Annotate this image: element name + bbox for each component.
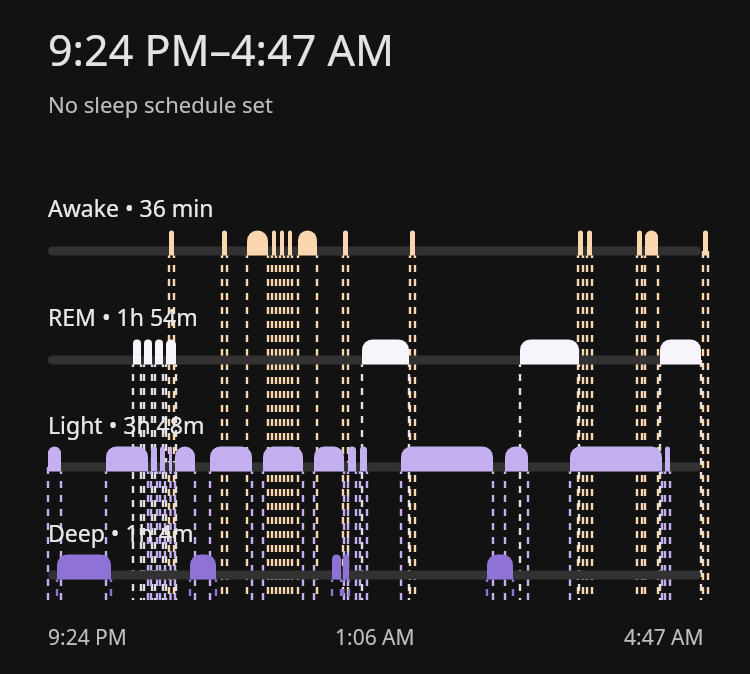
button[interactable]: 9:24 PM–4:47 AM: [0, 16, 750, 123]
staticText: REM • 1h 54m: [48, 301, 198, 332]
button[interactable]: Deep • 1h 4m: [48, 517, 194, 548]
button[interactable]: Awake • 36 min: [48, 192, 214, 223]
staticText: 4:47 AM: [624, 623, 704, 652]
staticText: 9:24 PM–4:47 AM: [48, 20, 394, 79]
button[interactable]: REM • 1h 54m: [48, 301, 198, 332]
staticText: 9:24 PM: [48, 623, 127, 652]
staticText: 1:06 AM: [335, 623, 415, 652]
staticText: Light • 3h 48m: [48, 409, 205, 440]
staticText: Awake • 36 min: [48, 192, 214, 223]
staticText: No sleep schedule set: [48, 89, 273, 119]
staticText: Deep • 1h 4m: [48, 517, 194, 548]
button[interactable]: Light • 3h 48m: [48, 409, 205, 440]
